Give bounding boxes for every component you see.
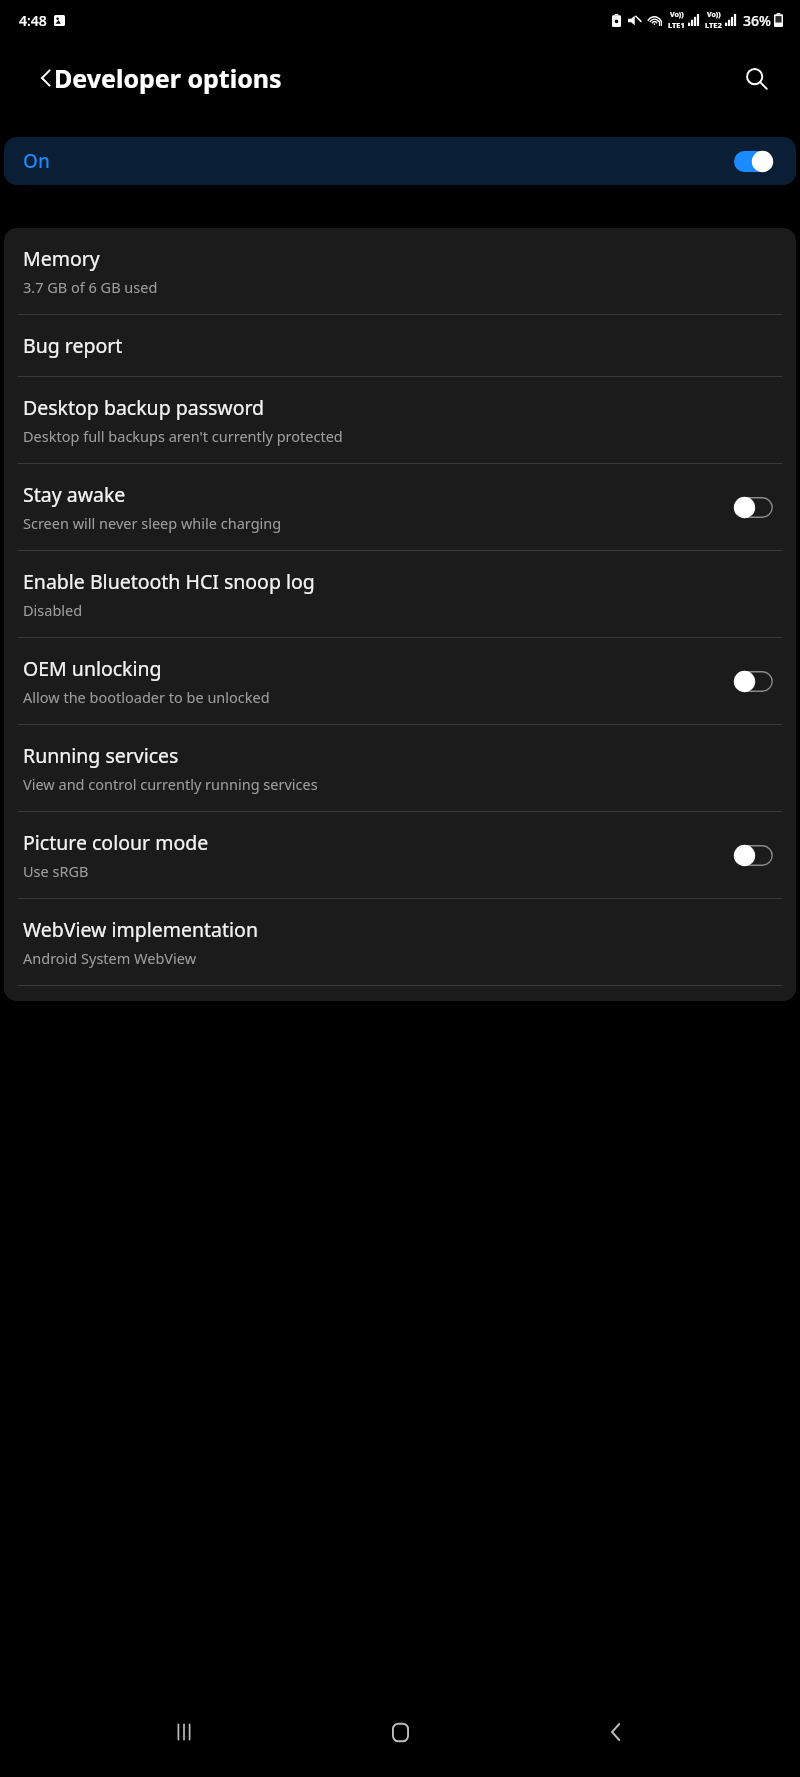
button[interactable]: Toggle off	[734, 671, 773, 692]
staticText: Allow the bootloader to be unlocked	[23, 687, 270, 707]
staticText: Developer options	[54, 61, 282, 95]
button[interactable]: Bug report	[4, 315, 796, 376]
button[interactable]: Search	[733, 55, 779, 101]
staticText: View and control currently running servi…	[23, 774, 318, 794]
staticText: Bug report	[23, 332, 123, 359]
button[interactable]: Back	[584, 1700, 648, 1764]
staticText: LTE1	[668, 20, 685, 30]
staticText: WebView implementation	[23, 916, 258, 943]
staticText: Screen will never sleep while charging	[23, 513, 282, 533]
staticText: 3.7 GB of 6 GB used	[23, 277, 158, 297]
staticText: Picture colour mode	[23, 829, 209, 856]
button[interactable]: Toggle on	[734, 151, 773, 172]
button[interactable]: Stay awake	[4, 464, 796, 550]
button[interactable]: Picture colour mode	[4, 812, 796, 898]
button[interactable]: OEM unlocking	[4, 638, 796, 724]
button[interactable]: On	[4, 137, 796, 185]
button[interactable]: Toggle off	[734, 497, 773, 518]
button[interactable]: Toggle off	[734, 845, 773, 866]
staticText: Disabled	[23, 600, 83, 620]
button[interactable]: Enable Bluetooth HCI snoop log	[4, 551, 796, 637]
staticText: Memory	[23, 245, 100, 272]
staticText: 36%	[743, 11, 771, 30]
staticText: Enable Bluetooth HCI snoop log	[23, 568, 315, 595]
staticText: Use sRGB	[23, 861, 89, 881]
button[interactable]: Home	[368, 1700, 432, 1764]
staticText: Desktop backup password	[23, 394, 265, 421]
button[interactable]: Recent apps	[152, 1700, 216, 1764]
staticText: OEM unlocking	[23, 655, 162, 682]
staticText: Desktop full backups aren't currently pr…	[23, 426, 343, 446]
button[interactable]: Running services	[4, 725, 796, 811]
button[interactable]: WebView implementation	[4, 899, 796, 985]
staticText: Running services	[23, 742, 179, 769]
button[interactable]: Desktop backup password	[4, 377, 796, 463]
staticText: Stay awake	[23, 481, 126, 508]
button[interactable]: Memory	[4, 228, 796, 314]
staticText: Android System WebView	[23, 948, 197, 968]
button[interactable]: Back	[24, 56, 68, 100]
staticText: Vo))	[670, 10, 684, 20]
staticText: LTE2	[705, 20, 722, 30]
staticText: 4:48	[19, 11, 47, 30]
staticText: Vo))	[707, 10, 721, 20]
staticText: On	[23, 148, 50, 174]
